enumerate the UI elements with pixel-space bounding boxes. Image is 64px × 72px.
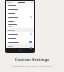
button[interactable] xyxy=(6,32,34,36)
button[interactable]: Toggle setting xyxy=(29,41,32,43)
staticText: Personalize every option and control xyxy=(0,64,64,67)
button[interactable] xyxy=(6,23,34,28)
button[interactable] xyxy=(6,36,34,40)
button[interactable] xyxy=(6,19,34,23)
staticText: Custom Settings xyxy=(0,57,64,63)
button[interactable]: Toggle setting xyxy=(6,40,34,44)
button[interactable] xyxy=(6,7,34,11)
button[interactable] xyxy=(6,15,34,19)
button[interactable] xyxy=(6,11,34,15)
